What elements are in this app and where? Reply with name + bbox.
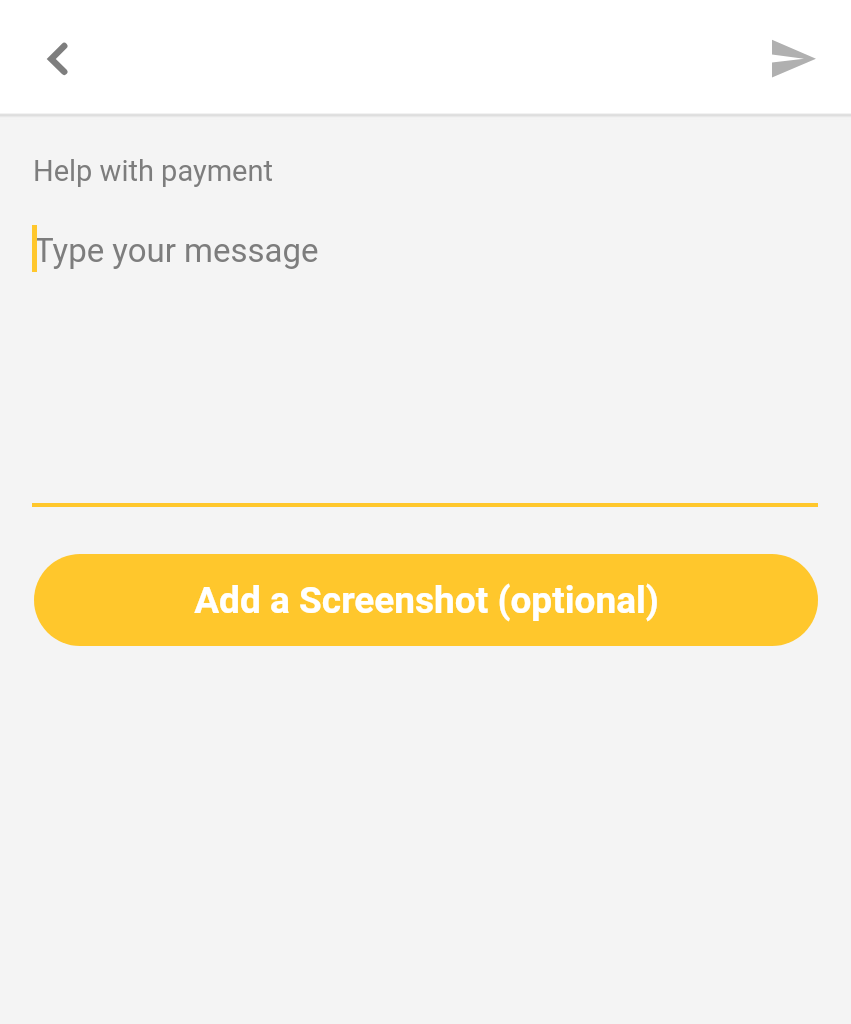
staticText: Type your message [34,231,319,270]
button[interactable]: Send [755,19,835,99]
staticText: Add a Screenshot (optional) [194,579,659,622]
button[interactable]: Back [16,22,96,102]
staticText: Help with payment [33,154,273,188]
button[interactable]: Add a Screenshot (optional) [34,554,818,646]
